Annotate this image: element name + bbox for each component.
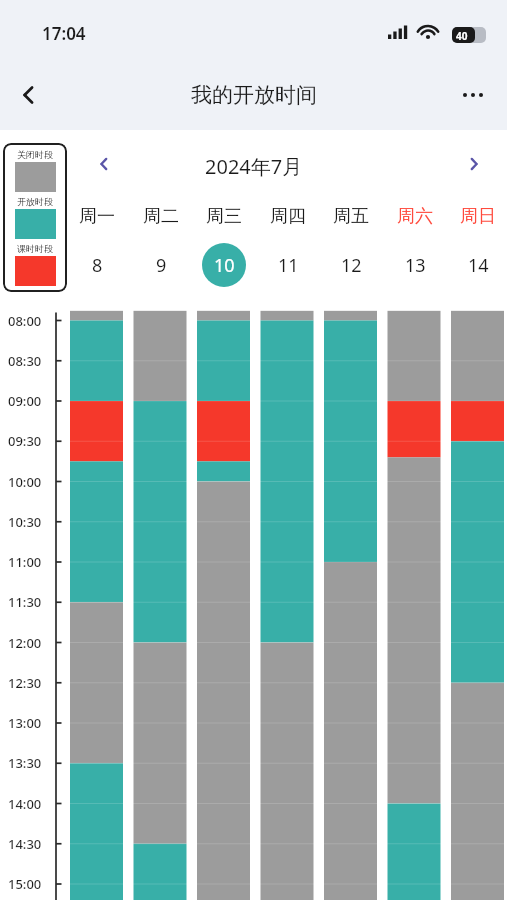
staticText: 12:00 (8, 634, 42, 652)
staticText: 11:30 (8, 593, 42, 611)
staticText: 关闭时段 (17, 149, 53, 160)
staticText: 14 (468, 253, 489, 278)
staticText: 10 (214, 253, 235, 278)
staticText: 周六 (397, 205, 433, 228)
button[interactable]: 周四 (261, 205, 314, 287)
staticText: 周二 (143, 205, 179, 228)
staticText: 10:00 (8, 473, 42, 491)
staticText: 课时时段 (17, 243, 53, 254)
button[interactable]: 周五 (324, 205, 377, 287)
button[interactable]: 周三 (197, 205, 250, 287)
staticText: 周三 (206, 205, 242, 228)
button[interactable]: 周一 (70, 205, 123, 287)
staticText: 11:00 (8, 553, 42, 571)
staticText: 11 (278, 253, 299, 278)
button[interactable]: More options (450, 72, 496, 118)
button[interactable]: 关闭时段 (8, 149, 62, 286)
button[interactable]: 周二 (134, 205, 187, 287)
staticText: 我的开放时间 (191, 82, 317, 108)
staticText: 13:00 (8, 714, 42, 732)
staticText: 08:30 (8, 352, 42, 370)
button[interactable]: Back (6, 72, 52, 118)
staticText: 09:30 (8, 432, 42, 450)
staticText: 14:00 (8, 795, 42, 813)
staticText: 17:04 (42, 22, 86, 45)
staticText: 15:00 (8, 875, 42, 893)
staticText: 13 (405, 253, 426, 278)
button[interactable]: 周六 (388, 205, 441, 287)
staticText: 2024年7月 (205, 153, 303, 180)
button[interactable]: Next month (456, 146, 492, 182)
staticText: 08:00 (8, 312, 42, 330)
staticText: 10:30 (8, 513, 42, 531)
staticText: 12 (341, 253, 362, 278)
staticText: 开放时段 (17, 196, 53, 207)
button[interactable]: 周日 (451, 205, 504, 287)
staticText: 09:00 (8, 392, 42, 410)
staticText: 14:30 (8, 835, 42, 853)
staticText: 周一 (79, 205, 115, 228)
staticText: 周日 (460, 205, 496, 228)
button[interactable]: Previous month (86, 146, 122, 182)
staticText: 40 (456, 29, 468, 43)
staticText: 12:30 (8, 674, 42, 692)
staticText: 周四 (270, 205, 306, 228)
staticText: 13:30 (8, 754, 42, 772)
staticText: 周五 (333, 205, 369, 228)
staticText: 8 (92, 253, 103, 278)
staticText: 9 (156, 253, 167, 278)
